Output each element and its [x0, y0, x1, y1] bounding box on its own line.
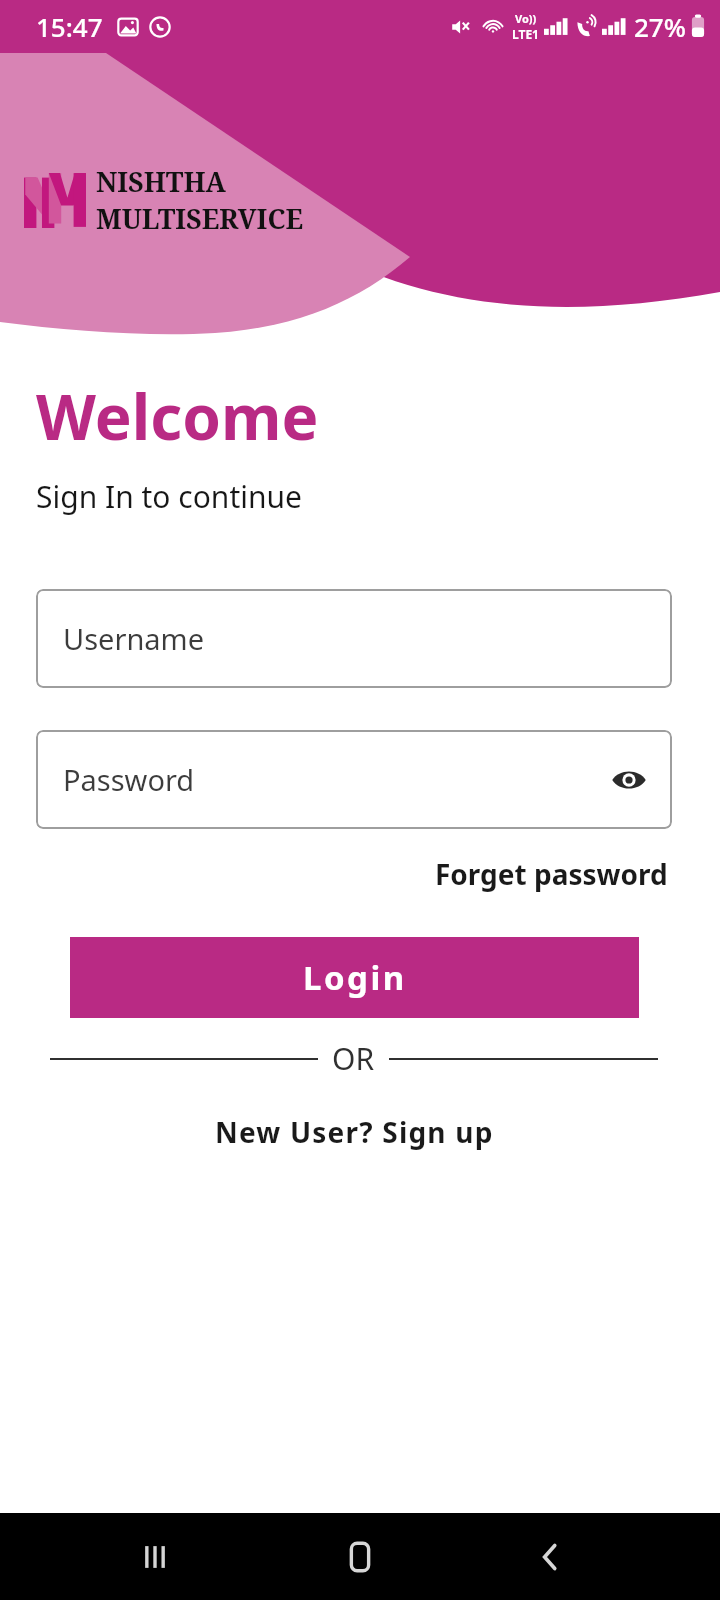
button[interactable]: Home [330, 1527, 390, 1587]
staticText: Vo)) [515, 11, 537, 26]
staticText: Sign In to continue [36, 476, 302, 517]
staticText: Forget password [435, 855, 668, 893]
button[interactable]: Back [520, 1527, 580, 1587]
button[interactable]: Password [36, 730, 672, 829]
staticText: Welcome [36, 374, 319, 458]
staticText: 15:47 [36, 9, 103, 44]
staticText: Username [63, 619, 205, 658]
button[interactable]: Forget password [431, 851, 672, 897]
staticText: OR [332, 1038, 375, 1079]
staticText: MULTISERVICE [96, 200, 304, 237]
staticText: Password [63, 760, 195, 799]
button[interactable]: Login [70, 937, 639, 1018]
button[interactable]: New User? Sign up [209, 1109, 500, 1155]
button[interactable]: Show password [606, 757, 652, 803]
button[interactable]: Username [36, 589, 672, 688]
staticText: NISHTHA [96, 163, 226, 200]
staticText: Login [303, 955, 407, 1000]
staticText: 27% [634, 9, 686, 44]
button[interactable]: Recent apps [125, 1527, 185, 1587]
staticText: LTE1 [512, 26, 539, 42]
staticText: New User? Sign up [215, 1113, 494, 1151]
